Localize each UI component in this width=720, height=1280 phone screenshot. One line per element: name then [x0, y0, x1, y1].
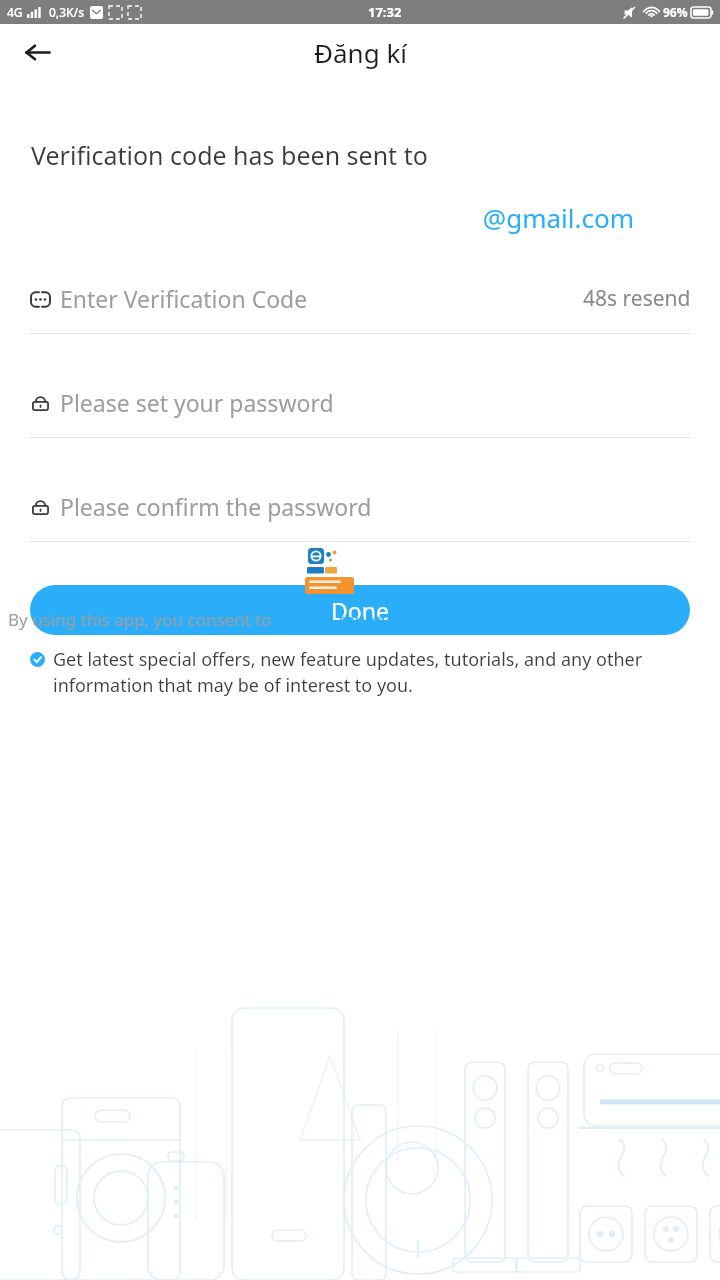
button[interactable]: 《Thỏa thuận dịch vụ và chính sách bảo mậ… [277, 608, 647, 631]
staticText: Verification code has been sent to [31, 138, 428, 172]
button[interactable]: 48s resend [583, 284, 691, 313]
staticText: Get latest special offers, new feature u… [53, 647, 690, 698]
staticText: Enter Verification Code [60, 283, 308, 314]
staticText: By using this app, you consent to [8, 608, 277, 631]
staticText: 0,3K/s [49, 4, 85, 20]
button[interactable]: Done [30, 585, 690, 635]
staticText: 96% [663, 4, 688, 20]
staticText: 17:32 [368, 3, 402, 21]
button[interactable]: Back [14, 29, 60, 75]
staticText: Please confirm the password [60, 491, 372, 522]
staticText: 4G [7, 4, 23, 20]
staticText: Done [331, 595, 389, 626]
staticText: Đăng kí [314, 35, 407, 70]
button[interactable]: Get latest special offers, new feature u… [30, 647, 690, 698]
staticText: 48s resend [583, 284, 691, 313]
staticText: 《Thỏa thuận dịch vụ và chính sách bảo mậ… [277, 608, 647, 631]
staticText: @gmail.com [0, 200, 634, 235]
staticText: Please set your password [60, 387, 334, 418]
